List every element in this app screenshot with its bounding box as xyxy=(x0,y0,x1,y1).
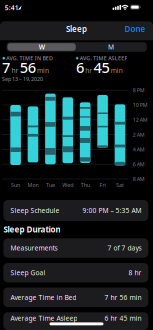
staticText: 7 xyxy=(2,58,10,77)
button[interactable]: Sleep Schedule xyxy=(3,200,148,221)
staticText: min xyxy=(37,66,49,75)
staticText: 8 PM xyxy=(133,87,145,94)
staticText: Sleep Goal xyxy=(10,268,45,277)
staticText: 56 xyxy=(20,58,36,77)
staticText: AVG. TIME IN BED xyxy=(6,55,53,62)
staticText: 4 AM xyxy=(133,146,145,153)
staticText: Tue xyxy=(46,181,55,189)
staticText: M xyxy=(108,43,114,51)
staticText: Sat xyxy=(116,181,124,189)
staticText: 10 PM xyxy=(133,101,148,109)
staticText: Fri xyxy=(100,181,106,189)
staticText: Average Time Asleep xyxy=(10,314,77,323)
staticText: Sleep Schedule xyxy=(10,206,59,215)
button[interactable]: Sleep Goal xyxy=(3,263,148,282)
staticText: 6 AM xyxy=(133,161,145,168)
staticText: Sleep xyxy=(66,24,87,34)
staticText: Sep 13 – 19, 2020 xyxy=(2,75,43,82)
staticText: Done xyxy=(124,24,145,34)
staticText: 6 xyxy=(76,58,84,77)
staticText: 9:00 PM – 5:35 AM xyxy=(82,206,141,215)
button[interactable]: Average Time Asleep xyxy=(3,312,148,330)
staticText: W xyxy=(39,43,45,51)
staticText: hr xyxy=(11,66,18,75)
staticText: 8 AM xyxy=(133,175,145,183)
staticText: Measurements xyxy=(10,244,57,252)
button[interactable]: Average Time in Bed xyxy=(3,288,148,307)
staticText: Sleep Duration xyxy=(3,224,60,235)
staticText: Mon xyxy=(27,181,38,189)
staticText: min xyxy=(111,66,123,75)
button[interactable]: M xyxy=(77,43,145,51)
staticText: AVG. TIME ASLEEP xyxy=(80,55,127,62)
staticText: 7 hr 56 min xyxy=(104,293,141,302)
staticText: Average Time in Bed xyxy=(10,293,76,302)
button[interactable]: Measurements xyxy=(3,238,148,258)
staticText: 5:41 xyxy=(5,3,19,12)
staticText: hr xyxy=(85,66,92,75)
staticText: 2 AM xyxy=(133,131,145,138)
staticText: Wed xyxy=(62,181,73,189)
staticText: 7 of 7 days xyxy=(107,244,141,252)
staticText: 6 hr 45 min xyxy=(104,314,141,323)
button[interactable]: Done xyxy=(0,0,153,330)
staticText: 45 xyxy=(93,58,109,77)
staticText: 8 hr xyxy=(128,268,141,277)
staticText: 12 AM xyxy=(133,116,148,123)
button[interactable]: W xyxy=(7,43,76,51)
staticText: Sun xyxy=(11,181,20,189)
staticText: Thu xyxy=(81,181,90,189)
